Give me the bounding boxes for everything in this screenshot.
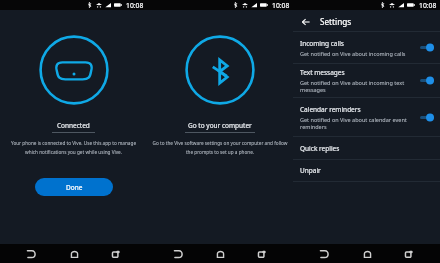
staticText: 10:08 <box>419 1 437 10</box>
staticText: Go to your computer <box>188 121 252 130</box>
button[interactable]: Home <box>356 244 378 263</box>
staticText: Connected <box>57 121 90 130</box>
staticText: Calendar reminders <box>300 105 361 114</box>
button[interactable]: Back <box>20 244 42 263</box>
staticText: 10:08 <box>126 1 144 10</box>
staticText: Get notified on Vive about calendar even… <box>300 116 416 130</box>
staticText: Unpair <box>300 166 321 175</box>
staticText: Incoming calls <box>300 39 344 48</box>
button[interactable]: Recent apps <box>105 244 127 263</box>
button[interactable]: Done <box>35 178 113 196</box>
staticText: Quick replies <box>300 144 340 153</box>
button[interactable]: Quick replies <box>293 137 440 159</box>
button[interactable]: Home <box>63 244 85 263</box>
button[interactable]: Home <box>209 244 231 263</box>
staticText: Get notified on Vive about incoming text… <box>300 79 416 93</box>
button[interactable]: Recent apps <box>251 244 273 263</box>
button[interactable]: Incoming calls <box>293 32 440 63</box>
staticText: Get notified on Vive about incoming call… <box>300 50 406 57</box>
staticText: Your phone is connected to Vive. Use thi… <box>5 140 142 155</box>
staticText: Settings <box>320 16 352 27</box>
button[interactable]: Text messages <box>293 64 440 97</box>
button[interactable]: Back <box>299 15 312 28</box>
button[interactable]: Recent apps <box>398 244 420 263</box>
button[interactable]: Back <box>313 244 335 263</box>
staticText: Go to the Vive software settings on your… <box>149 140 291 155</box>
staticText: Text messages <box>300 68 345 77</box>
button[interactable]: Back <box>167 244 189 263</box>
button[interactable]: Calendar reminders <box>293 98 440 136</box>
staticText: Done <box>66 183 83 192</box>
button[interactable]: Unpair <box>293 160 440 181</box>
staticText: 10:08 <box>272 1 290 10</box>
